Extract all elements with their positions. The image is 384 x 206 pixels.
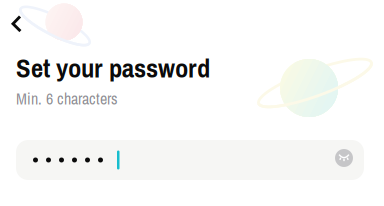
button[interactable]: Back	[0, 4, 37, 44]
staticText: Min. 6 characters	[16, 88, 118, 110]
button[interactable]: Show password	[335, 140, 364, 180]
staticText: Set your password	[16, 50, 210, 86]
